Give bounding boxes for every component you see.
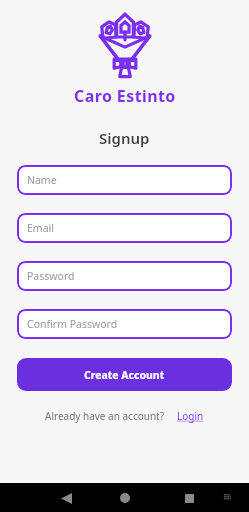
staticText: Already have an account? [45, 409, 165, 423]
staticText: Caro Estinto [74, 85, 176, 107]
button[interactable]: Switch input method [219, 489, 237, 507]
staticText: Create Account [84, 368, 165, 382]
button[interactable]: Back [56, 488, 76, 508]
staticText: Password [27, 269, 75, 283]
button[interactable]: Name [17, 165, 232, 195]
button[interactable]: Home [115, 488, 135, 508]
button[interactable]: Password [17, 261, 232, 291]
button[interactable]: Login [177, 409, 204, 423]
button[interactable]: Email [17, 213, 232, 243]
staticText: Signup [99, 128, 150, 148]
button[interactable]: Recent apps [179, 488, 199, 508]
button[interactable]: Create Account [17, 358, 232, 391]
staticText: Name [27, 173, 57, 187]
staticText: Login [177, 409, 204, 423]
staticText: Email [27, 221, 54, 235]
staticText: Confirm Password [27, 317, 118, 331]
button[interactable]: Confirm Password [17, 309, 232, 339]
